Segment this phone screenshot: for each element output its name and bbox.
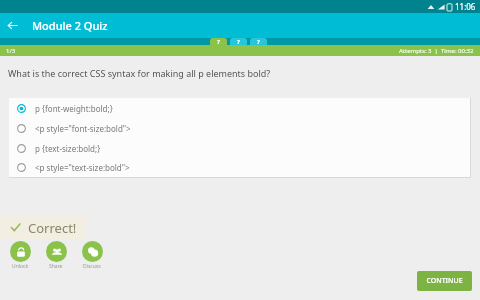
button[interactable]: <p style="font-size:bold">: [9, 118, 470, 138]
staticText: <p style="text-size:bold">: [35, 162, 130, 173]
button[interactable]: Discuss: [76, 241, 108, 270]
staticText: CONTINUE: [426, 276, 463, 286]
staticText: ?: [237, 38, 240, 45]
staticText: Correct!: [28, 219, 77, 237]
staticText: Module 2 Quiz: [32, 18, 108, 33]
button[interactable]: p {text-size:bold;}: [9, 138, 470, 158]
button[interactable]: Question tab: [250, 38, 267, 45]
button[interactable]: Unlock: [4, 241, 36, 270]
button[interactable]: Back: [0, 13, 25, 38]
staticText: Discuss: [83, 263, 101, 270]
staticText: p {text-size:bold;}: [35, 143, 101, 154]
button[interactable]: CONTINUE: [417, 271, 472, 291]
staticText: 11:06: [455, 1, 476, 12]
button[interactable]: Share: [40, 241, 72, 270]
button[interactable]: Question tab: [210, 38, 227, 45]
staticText: p {font-weight:bold;}: [35, 103, 113, 114]
staticText: Unlock: [12, 263, 29, 270]
staticText: Share: [49, 263, 63, 270]
button[interactable]: Question tab: [230, 38, 247, 45]
staticText: 1/3: [6, 47, 16, 55]
button[interactable]: <p style="text-size:bold">: [9, 158, 470, 177]
staticText: ?: [217, 38, 220, 45]
staticText: ?: [257, 38, 260, 45]
staticText: What is the correct CSS syntax for makin…: [8, 67, 271, 79]
button[interactable]: p {font-weight:bold;}: [9, 98, 470, 118]
staticText: Attempts: 3 | Time: 00:32: [399, 47, 474, 55]
staticText: <p style="font-size:bold">: [35, 123, 131, 134]
